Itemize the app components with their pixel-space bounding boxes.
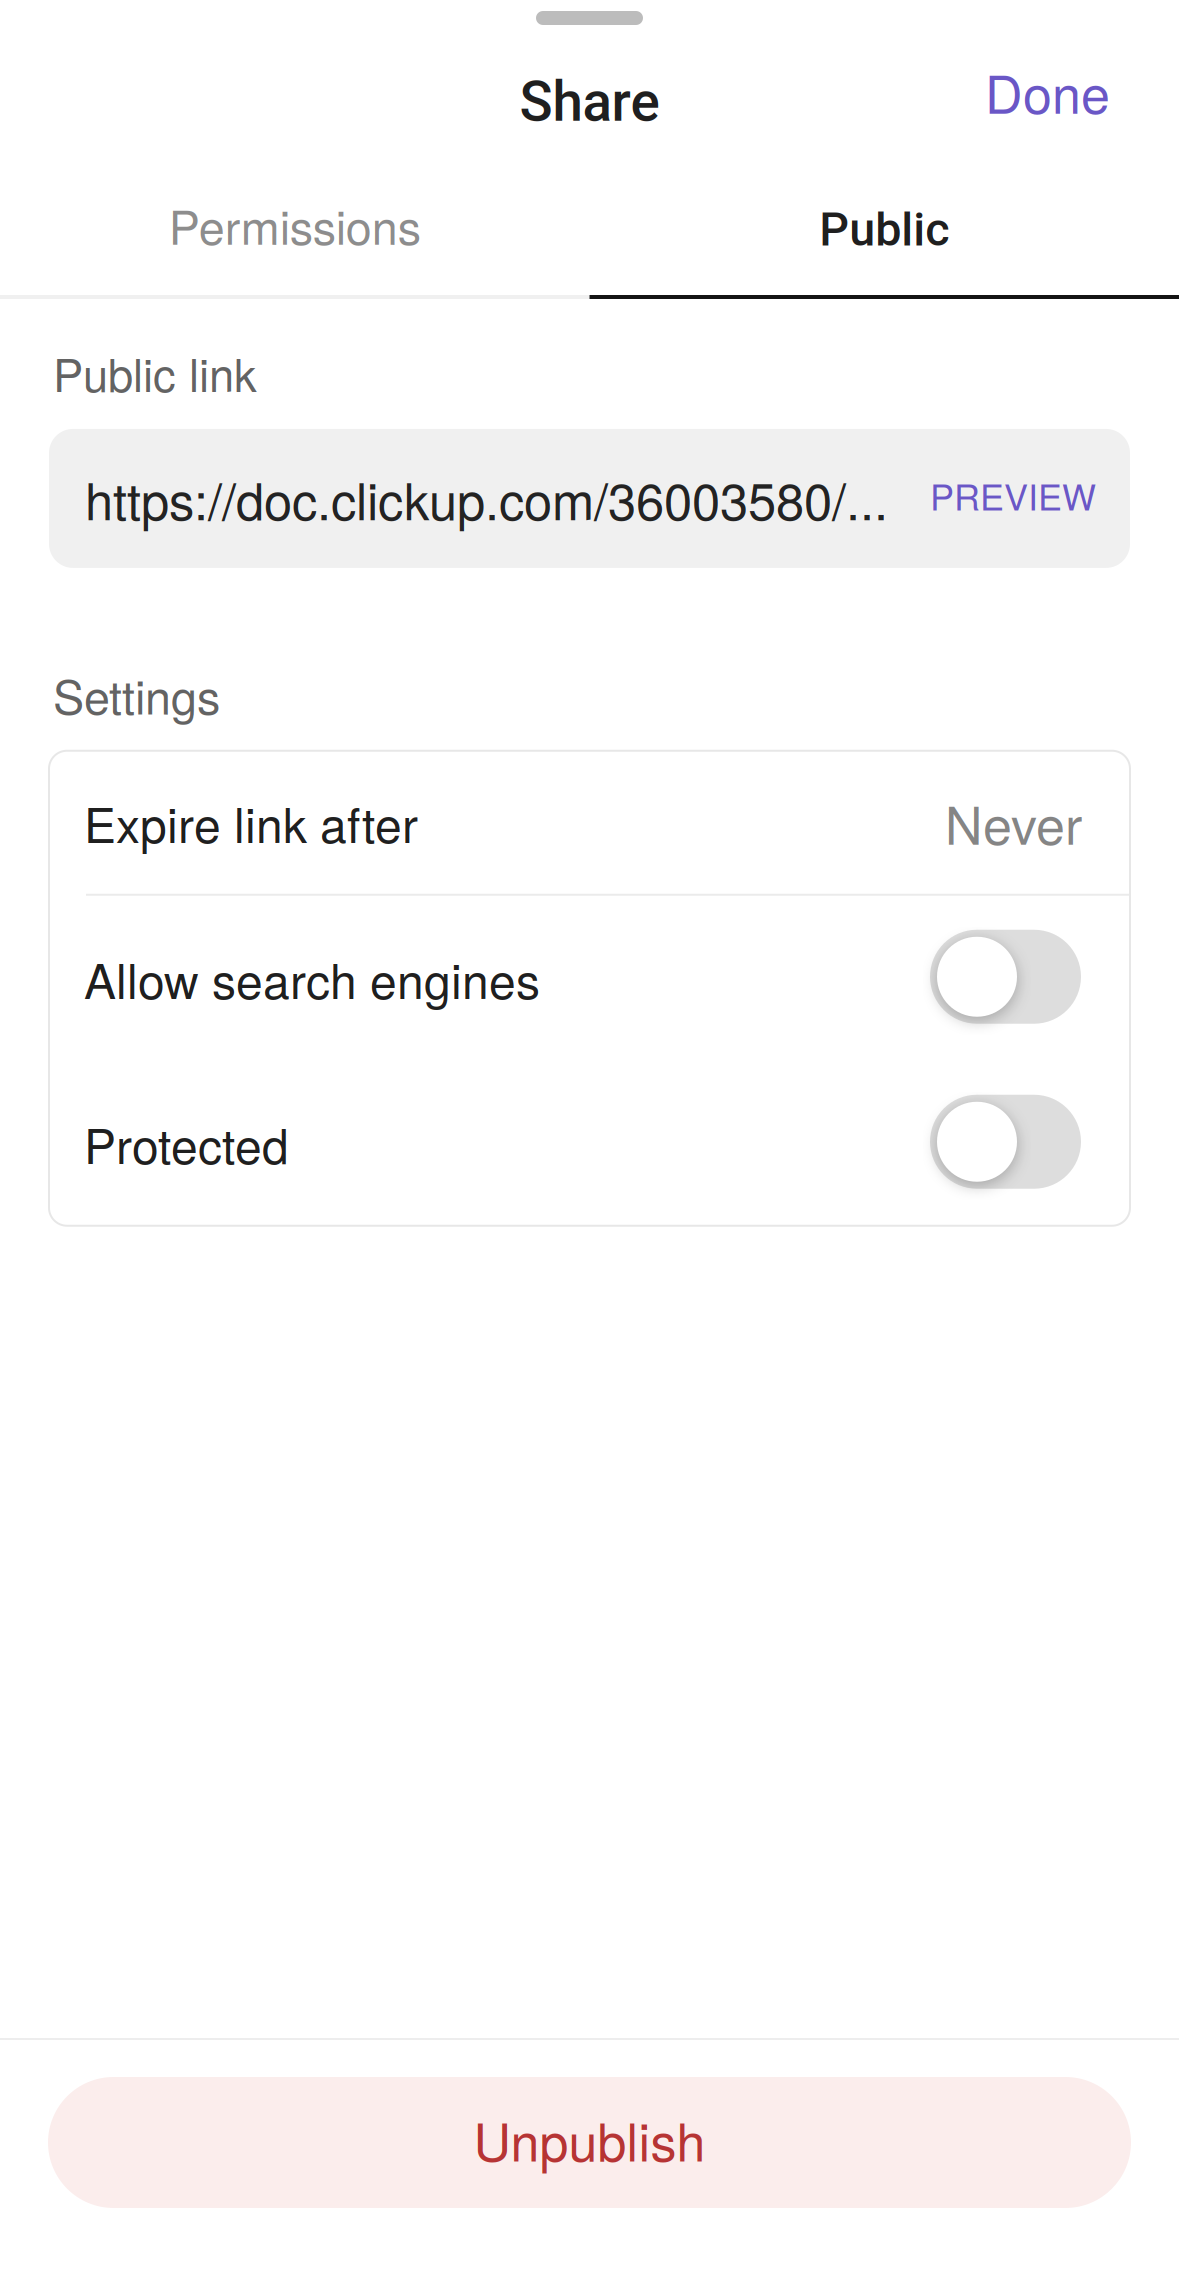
staticText: Protected	[84, 1109, 289, 1178]
staticText: Settings	[53, 661, 220, 728]
staticText: Allow search engines	[84, 944, 540, 1013]
staticText: Public link	[53, 340, 257, 405]
staticText: Share	[519, 70, 659, 134]
staticText: Unpublish	[473, 2102, 705, 2176]
button[interactable]: Expire link after	[49, 751, 1130, 894]
staticText: Public	[819, 202, 949, 257]
staticText: Permissions	[169, 191, 421, 258]
button[interactable]: Public	[589, 149, 1179, 298]
staticText: Expire link after	[84, 788, 418, 857]
staticText: Never	[945, 785, 1082, 859]
button[interactable]: Protected	[49, 1065, 1130, 1226]
staticText: Done	[985, 54, 1110, 128]
staticText: https://doc.clickup.com/36003580/...	[85, 462, 888, 535]
button[interactable]: https://doc.clickup.com/36003580/...	[49, 429, 1130, 568]
button[interactable]: Permissions	[0, 149, 589, 298]
button[interactable]: Unpublish	[48, 2077, 1131, 2208]
staticText: PREVIEW	[930, 469, 1096, 521]
button[interactable]: Done	[963, 34, 1132, 148]
button[interactable]: Allow search engines	[49, 896, 1130, 1065]
